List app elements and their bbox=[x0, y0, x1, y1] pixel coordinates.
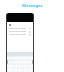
button[interactable]: Lorem ipsum dolor bbox=[7, 33, 33, 36]
button[interactable] bbox=[9, 56, 11, 60]
button[interactable] bbox=[12, 64, 15, 68]
button[interactable] bbox=[24, 56, 27, 60]
button[interactable] bbox=[8, 60, 10, 64]
button[interactable] bbox=[18, 68, 23, 72]
button[interactable] bbox=[23, 68, 28, 72]
button[interactable] bbox=[11, 56, 13, 60]
button[interactable] bbox=[15, 56, 18, 60]
button[interactable] bbox=[21, 56, 24, 60]
button[interactable] bbox=[30, 56, 33, 60]
button[interactable] bbox=[7, 64, 9, 68]
button[interactable] bbox=[7, 68, 13, 72]
button[interactable] bbox=[13, 56, 15, 60]
button[interactable] bbox=[20, 60, 23, 64]
button[interactable] bbox=[10, 60, 12, 64]
button[interactable] bbox=[17, 60, 20, 64]
button[interactable] bbox=[23, 60, 26, 64]
button[interactable]: Lorem ipsum dolor bbox=[7, 27, 33, 30]
button[interactable] bbox=[26, 60, 29, 64]
button[interactable] bbox=[18, 64, 21, 68]
button[interactable] bbox=[24, 64, 27, 68]
button[interactable] bbox=[29, 60, 32, 64]
button[interactable] bbox=[15, 64, 18, 68]
button[interactable] bbox=[27, 64, 30, 68]
staticText: Lorem ipsum dolor bbox=[9, 33, 26, 36]
staticText: Lorem ipsum dolor bbox=[9, 27, 26, 30]
button[interactable] bbox=[9, 64, 12, 68]
button[interactable] bbox=[12, 60, 14, 64]
button[interactable] bbox=[14, 60, 17, 64]
button[interactable] bbox=[18, 56, 21, 60]
button[interactable]: Lorem ipsum dolor bbox=[7, 30, 33, 33]
button[interactable] bbox=[27, 56, 30, 60]
staticText: Lorem ipsum dolor bbox=[9, 30, 26, 33]
button[interactable] bbox=[13, 68, 18, 72]
button[interactable] bbox=[21, 64, 24, 68]
button[interactable] bbox=[7, 56, 9, 60]
button[interactable] bbox=[30, 64, 33, 68]
staticText: Messages bbox=[22, 3, 43, 9]
button[interactable] bbox=[28, 68, 33, 72]
